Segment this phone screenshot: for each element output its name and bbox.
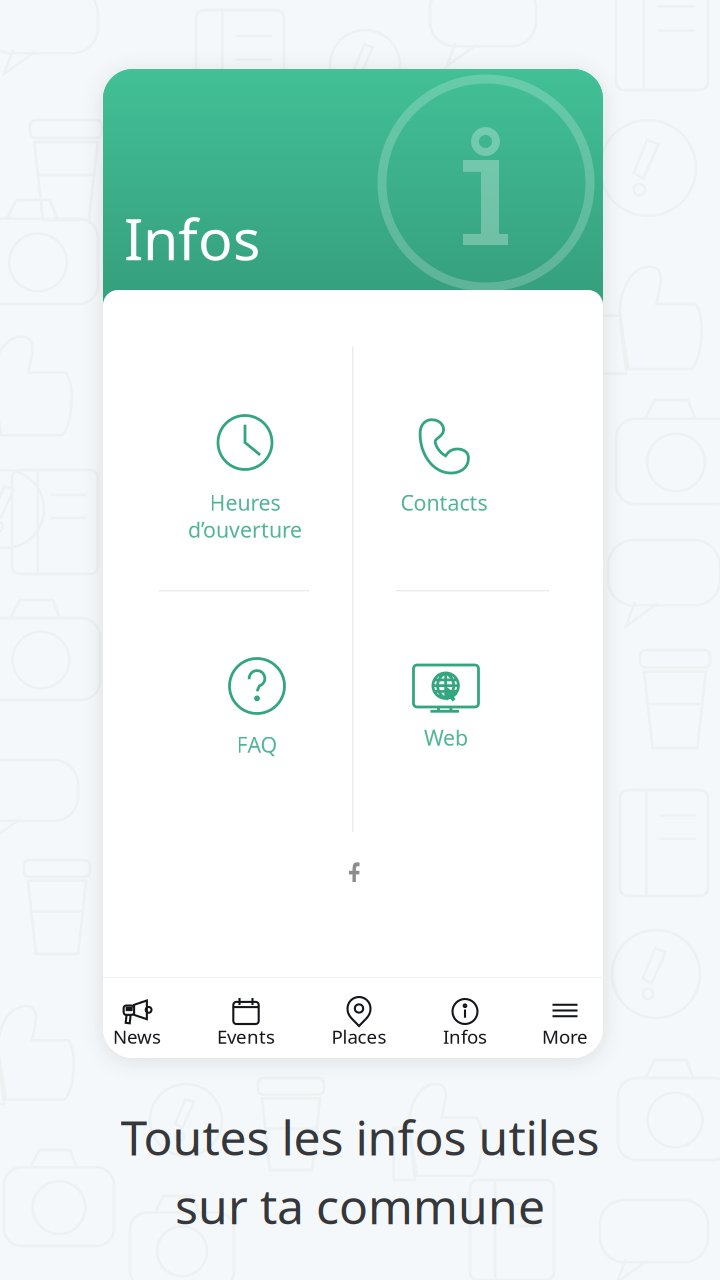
staticText: Events	[217, 1024, 275, 1049]
staticText: News	[113, 1024, 161, 1049]
staticText: Infos	[443, 1024, 487, 1049]
button[interactable]: News	[89, 977, 185, 1058]
button[interactable]: Web	[351, 665, 541, 815]
staticText: FAQ	[236, 730, 277, 759]
button[interactable]: Facebook	[330, 848, 378, 896]
button[interactable]: Heures	[150, 414, 340, 564]
staticText: Heures	[209, 488, 280, 517]
staticText: sur ta commune	[175, 1174, 545, 1237]
button[interactable]: Contacts	[349, 417, 539, 567]
staticText: d’ouverture	[188, 515, 302, 544]
staticText: Web	[424, 723, 468, 752]
staticText: More	[542, 1024, 588, 1049]
staticText: Toutes les infos utiles	[120, 1105, 599, 1169]
button[interactable]: FAQ	[162, 657, 352, 807]
button[interactable]: Events	[198, 977, 294, 1058]
staticText: Infos	[124, 200, 260, 276]
button[interactable]: More	[517, 977, 613, 1058]
staticText: Places	[331, 1024, 386, 1049]
button[interactable]: Places	[311, 977, 407, 1058]
button[interactable]: Infos	[417, 977, 513, 1058]
staticText: Contacts	[400, 488, 487, 517]
